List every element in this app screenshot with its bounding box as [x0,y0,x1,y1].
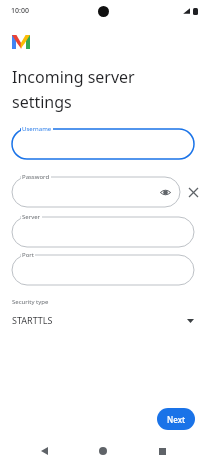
staticText: 10:00 [11,6,29,16]
staticText: settings [12,91,72,113]
button[interactable]: Username [12,129,194,159]
staticText: Incoming server [12,66,135,88]
button[interactable]: Home [88,441,118,461]
staticText: Next [167,414,186,425]
button[interactable]: Password [12,177,180,207]
button[interactable]: Show password [158,185,172,199]
button[interactable]: Back [29,441,59,461]
staticText: Port [22,251,34,259]
button[interactable]: Port [12,255,194,285]
button[interactable]: Server [12,217,194,247]
staticText: Security type [12,298,49,306]
button[interactable]: Next [157,408,195,430]
button[interactable]: Recent apps [147,441,177,461]
button[interactable]: Clear password [180,177,206,207]
button[interactable]: Security type [12,298,194,326]
staticText: Password [22,173,50,181]
staticText: STARTTLS [12,314,53,326]
staticText: Username [22,125,52,133]
staticText: Server [22,213,41,221]
